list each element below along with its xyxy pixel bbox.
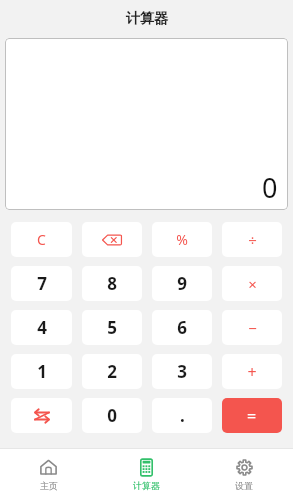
button[interactable]: = bbox=[222, 398, 282, 433]
other: Swap bbox=[31, 405, 53, 427]
staticText: 0 bbox=[107, 404, 117, 427]
button[interactable]: . bbox=[152, 398, 212, 433]
staticText: C bbox=[37, 230, 46, 249]
button[interactable]: Swap bbox=[11, 398, 72, 433]
button[interactable]: C bbox=[11, 222, 72, 257]
staticText: 3 bbox=[177, 360, 187, 383]
staticText: × bbox=[248, 274, 257, 294]
staticText: 主页 bbox=[40, 480, 58, 491]
button[interactable]: × bbox=[222, 266, 282, 301]
button[interactable]: − bbox=[222, 310, 282, 345]
button[interactable]: 计算器 bbox=[97, 448, 195, 500]
button[interactable]: 8 bbox=[82, 266, 142, 301]
button[interactable]: 6 bbox=[152, 310, 212, 345]
button[interactable]: 4 bbox=[11, 310, 72, 345]
staticText: 6 bbox=[177, 316, 187, 339]
staticText: 2 bbox=[107, 360, 117, 383]
button[interactable]: 设置 bbox=[195, 448, 293, 500]
staticText: . bbox=[180, 404, 185, 427]
button[interactable]: 7 bbox=[11, 266, 72, 301]
staticText: % bbox=[176, 230, 188, 249]
button[interactable]: ÷ bbox=[222, 222, 282, 257]
button[interactable]: 2 bbox=[82, 354, 142, 389]
staticText: + bbox=[247, 361, 257, 383]
button[interactable]: 主页 bbox=[0, 448, 97, 500]
button[interactable]: 1 bbox=[11, 354, 72, 389]
staticText: 设置 bbox=[235, 480, 253, 491]
button[interactable]: 5 bbox=[82, 310, 142, 345]
staticText: 8 bbox=[107, 272, 117, 295]
button[interactable]: 9 bbox=[152, 266, 212, 301]
staticText: 1 bbox=[37, 360, 47, 383]
staticText: = bbox=[247, 405, 257, 427]
button[interactable]: + bbox=[222, 354, 282, 389]
staticText: 5 bbox=[107, 316, 117, 339]
staticText: 9 bbox=[177, 272, 187, 295]
staticText: − bbox=[248, 318, 257, 338]
staticText: ÷ bbox=[248, 230, 257, 250]
button[interactable]: 3 bbox=[152, 354, 212, 389]
button[interactable]: 0 bbox=[82, 398, 142, 433]
staticText: 7 bbox=[37, 272, 47, 295]
button[interactable]: Backspace bbox=[82, 222, 142, 257]
staticText: 计算器 bbox=[133, 480, 160, 491]
staticText: 0 bbox=[262, 169, 278, 206]
staticText: 计算器 bbox=[126, 10, 168, 28]
staticText: 4 bbox=[37, 316, 47, 339]
other: Backspace bbox=[101, 229, 123, 251]
button[interactable]: % bbox=[152, 222, 212, 257]
